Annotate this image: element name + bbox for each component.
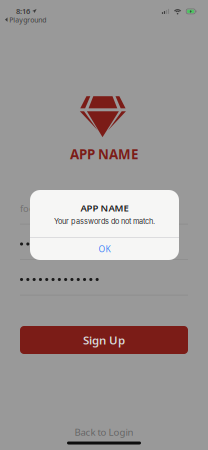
- button[interactable]: Playground: [5, 15, 46, 24]
- staticText: Back to Login: [74, 425, 133, 439]
- staticText: APP NAME: [70, 145, 138, 163]
- staticText: Sign Up: [83, 332, 125, 348]
- staticText: APP NAME: [80, 201, 128, 214]
- staticText: Your passwords do not match.: [54, 217, 155, 226]
- button[interactable]: Back to Login: [0, 426, 208, 438]
- button[interactable]: Sign Up: [20, 326, 188, 354]
- staticText: foo@bar.com: [20, 202, 78, 215]
- staticText: 8:16: [16, 6, 30, 16]
- staticText: OK: [98, 243, 110, 255]
- staticText: Playground: [9, 15, 46, 24]
- button[interactable]: OK: [30, 238, 179, 260]
